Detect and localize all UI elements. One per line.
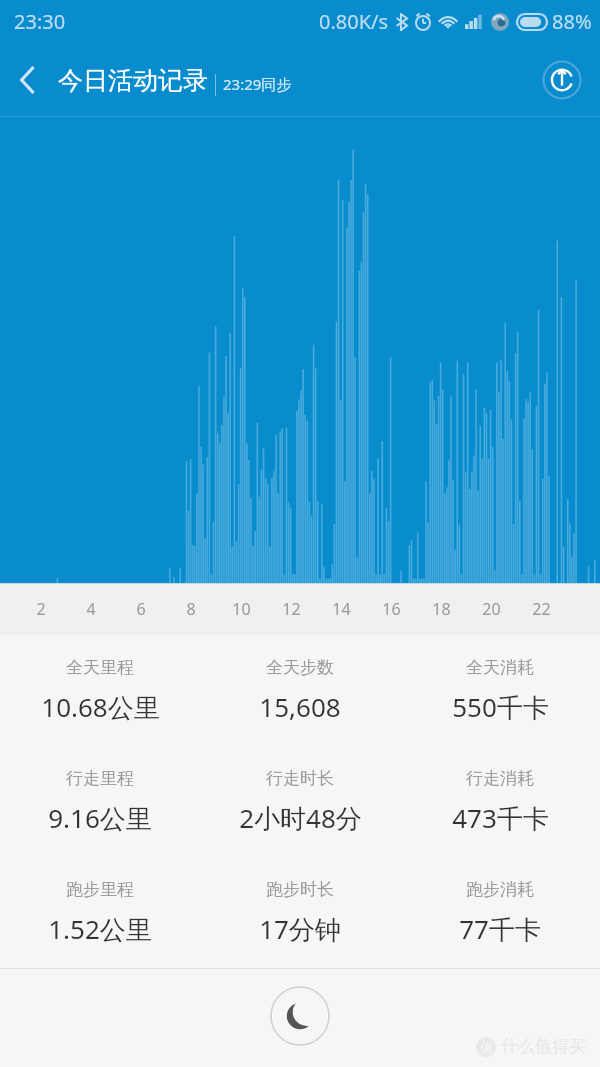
staticText: 行走里程 xyxy=(66,768,134,789)
staticText: 473千卡 xyxy=(452,800,549,836)
staticText: 行走消耗 xyxy=(466,768,534,789)
button[interactable]: 行走消耗 xyxy=(400,768,600,836)
button[interactable]: 跑步消耗 xyxy=(400,879,600,947)
staticText: 8 xyxy=(186,598,196,620)
staticText: 0.80K/s xyxy=(319,8,389,35)
staticText: 16 xyxy=(382,598,401,620)
staticText: 跑步里程 xyxy=(66,879,134,900)
button[interactable]: 行走时长 xyxy=(200,768,400,836)
button[interactable]: 全天消耗 xyxy=(400,657,600,725)
button[interactable]: 全天里程 xyxy=(0,657,200,725)
staticText: 6 xyxy=(136,598,146,620)
staticText: 77千卡 xyxy=(459,911,541,947)
staticText: 2 xyxy=(36,598,46,620)
staticText: 值 xyxy=(480,1039,493,1055)
staticText: 什么值得买 xyxy=(501,1036,586,1057)
button[interactable]: 全天步数 xyxy=(200,657,400,724)
staticText: 10 xyxy=(232,598,251,620)
staticText: 全天步数 xyxy=(266,657,334,678)
staticText: 23:30 xyxy=(14,8,66,35)
button[interactable]: Back xyxy=(0,52,56,108)
staticText: 全天里程 xyxy=(66,657,134,678)
staticText: 20 xyxy=(482,598,501,620)
staticText: 12 xyxy=(282,598,301,620)
staticText: 15,608 xyxy=(259,689,341,724)
staticText: 88% xyxy=(552,8,592,35)
staticText: 18 xyxy=(432,598,451,620)
staticText: 行走时长 xyxy=(266,768,334,789)
staticText: 23:29同步 xyxy=(223,74,292,94)
staticText: 14 xyxy=(332,598,351,620)
staticText: 17分钟 xyxy=(259,911,341,947)
staticText: 9.16公里 xyxy=(48,800,152,836)
staticText: 2小时48分 xyxy=(239,800,362,836)
staticText: 跑步消耗 xyxy=(466,879,534,900)
staticText: 10.68公里 xyxy=(41,689,160,725)
button[interactable]: Share xyxy=(540,58,584,102)
staticText: 4 xyxy=(86,598,96,620)
staticText: 550千卡 xyxy=(452,689,549,725)
staticText: 22 xyxy=(532,598,551,620)
staticText: 1.52公里 xyxy=(48,911,152,947)
button[interactable]: 跑步时长 xyxy=(200,879,400,947)
staticText: 今日活动记录 xyxy=(58,65,208,96)
staticText: 全天消耗 xyxy=(466,657,534,678)
button[interactable]: Sleep xyxy=(270,986,330,1046)
button[interactable]: 跑步里程 xyxy=(0,879,200,947)
button[interactable]: 行走里程 xyxy=(0,768,200,836)
staticText: 跑步时长 xyxy=(266,879,334,900)
